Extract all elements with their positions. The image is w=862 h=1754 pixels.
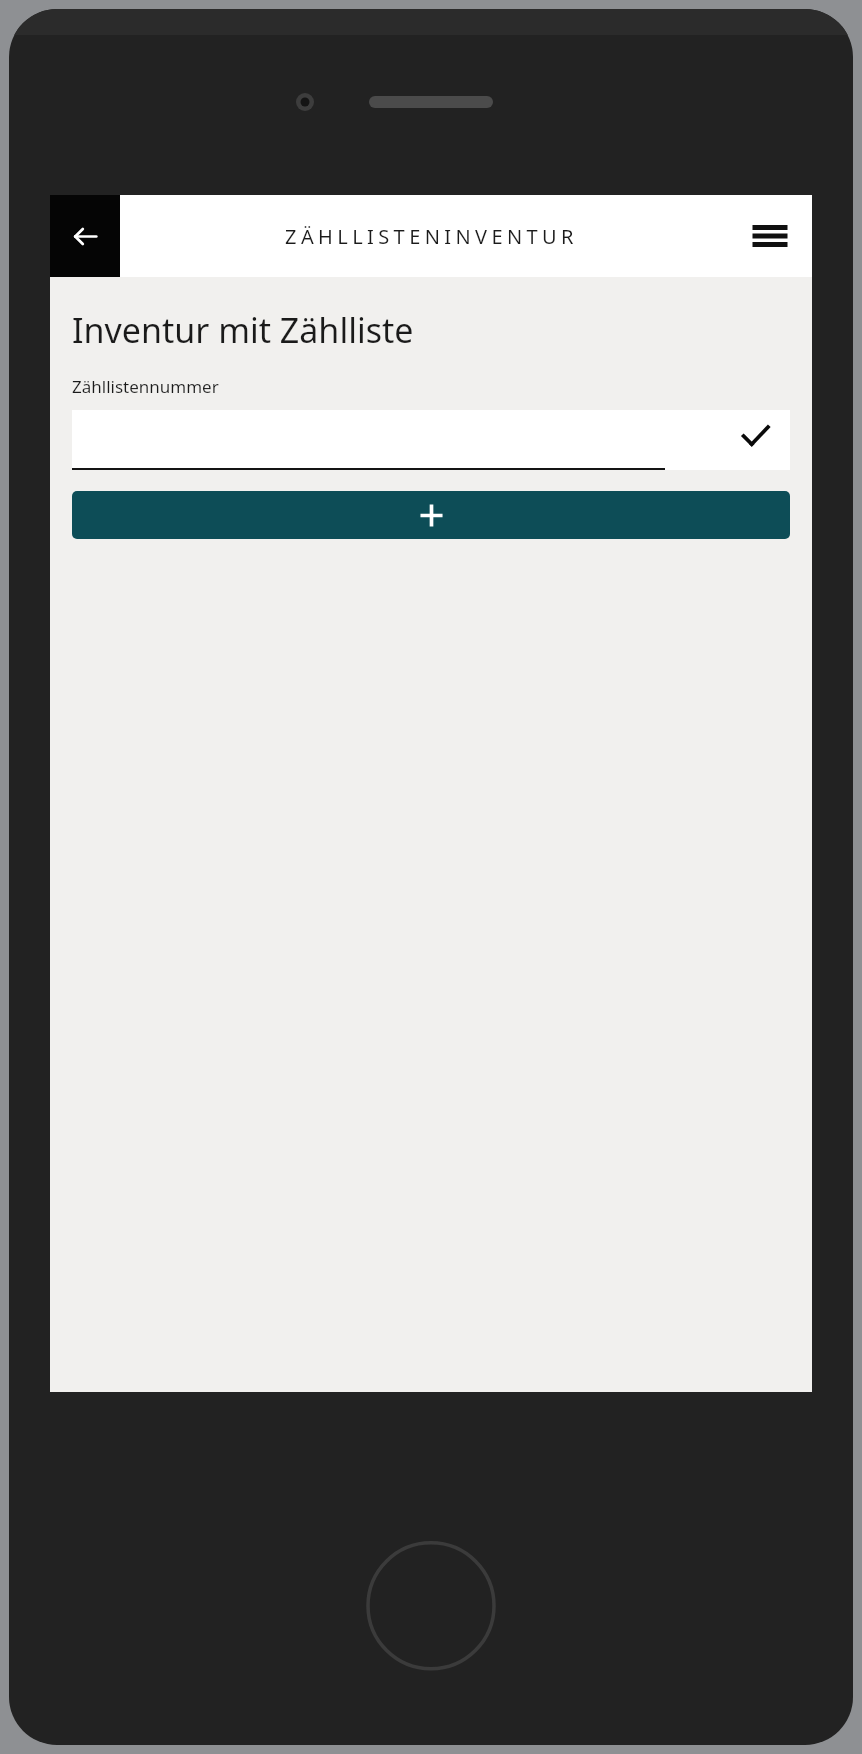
- button[interactable]: Menu: [744, 210, 796, 262]
- staticText: Zähllistennummer: [72, 375, 219, 398]
- button[interactable]: Confirm: [72, 410, 790, 470]
- button[interactable]: Back: [50, 195, 120, 277]
- button[interactable]: Confirm: [734, 414, 776, 456]
- staticText: Inventur mit Zählliste: [72, 307, 414, 353]
- button[interactable]: Hinzufügen: [72, 491, 790, 539]
- staticText: ZÄHLLISTENINVENTUR: [285, 223, 578, 250]
